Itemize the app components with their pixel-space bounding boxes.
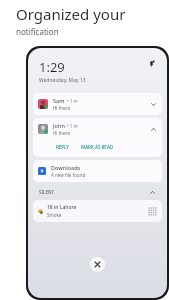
button[interactable]: SILENT: [33, 186, 162, 198]
staticText: Hi there: [53, 105, 70, 111]
button[interactable]: Sam: [33, 93, 162, 115]
button[interactable]: John: [33, 118, 162, 157]
staticText: Hi there: [53, 130, 70, 136]
button[interactable]: Notification settings: [146, 58, 156, 68]
staticText: Wednesday, May 13: [39, 77, 86, 84]
staticText: John: [53, 122, 65, 129]
staticText: REPLY: [56, 144, 69, 150]
staticText: 18 in Lahore: [47, 204, 77, 211]
button[interactable]: Expand: [149, 100, 157, 108]
button[interactable]: Collapse: [149, 125, 157, 133]
staticText: • 1 m: [67, 98, 78, 104]
button[interactable]: Downloads: [33, 160, 162, 182]
staticText: Downloads: [51, 164, 81, 171]
staticText: 1:29: [39, 58, 65, 76]
staticText: MARK AS READ: [81, 144, 114, 150]
button[interactable]: Close all notifications: [90, 257, 105, 272]
staticText: Smoke: [47, 212, 62, 218]
button[interactable]: MARK AS READ: [78, 142, 117, 152]
staticText: Organized your: [16, 4, 126, 24]
button[interactable]: 18 in Lahore: [33, 200, 162, 222]
button[interactable]: Collapse: [148, 188, 156, 196]
staticText: • 1 m: [67, 123, 78, 129]
staticText: SILENT: [39, 189, 54, 195]
staticText: A new file found: [51, 172, 86, 178]
staticText: notification: [16, 26, 59, 37]
staticText: Sam: [53, 97, 65, 104]
button[interactable]: REPLY: [53, 142, 72, 152]
